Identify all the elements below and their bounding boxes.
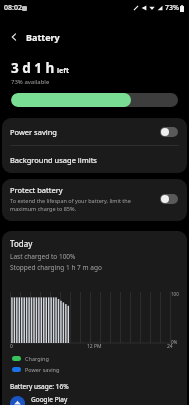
- staticText: 0: [10, 343, 13, 350]
- staticText: 12 PM: [87, 343, 102, 350]
- staticText: Battery: [26, 31, 60, 43]
- staticText: Stopped charging 1 h 7 m ago: [10, 263, 102, 272]
- staticText: Google Play: [31, 395, 68, 404]
- button[interactable]: Protect battery: [2, 179, 187, 221]
- staticText: 08:02: [4, 3, 22, 13]
- button[interactable]: Google Play: [10, 395, 182, 405]
- staticText: left: [57, 66, 70, 76]
- button[interactable]: Power saving: [2, 118, 187, 145]
- staticText: 24: [167, 343, 173, 350]
- staticText: To extend the lifespan of your battery, …: [10, 197, 154, 213]
- staticText: 0%: [171, 339, 178, 345]
- staticText: 73%: [165, 3, 179, 13]
- staticText: Background usage limits: [10, 155, 97, 165]
- button[interactable]: Toggle: [160, 194, 178, 204]
- staticText: Power saving: [25, 366, 60, 373]
- button[interactable]: Background usage limits: [2, 146, 187, 173]
- staticText: Battery usage: 16%: [10, 382, 69, 391]
- staticText: Power saving: [10, 127, 57, 137]
- staticText: 100: [171, 291, 179, 297]
- staticText: Protect battery: [10, 185, 63, 195]
- staticText: 3 d 1 h: [11, 59, 55, 77]
- button[interactable]: Back: [5, 28, 23, 46]
- staticText: 73% available: [11, 78, 50, 86]
- button[interactable]: Toggle: [160, 127, 178, 137]
- staticText: Charging: [25, 355, 49, 362]
- staticText: Last charged to 100%: [10, 252, 76, 261]
- staticText: Today: [10, 238, 33, 249]
